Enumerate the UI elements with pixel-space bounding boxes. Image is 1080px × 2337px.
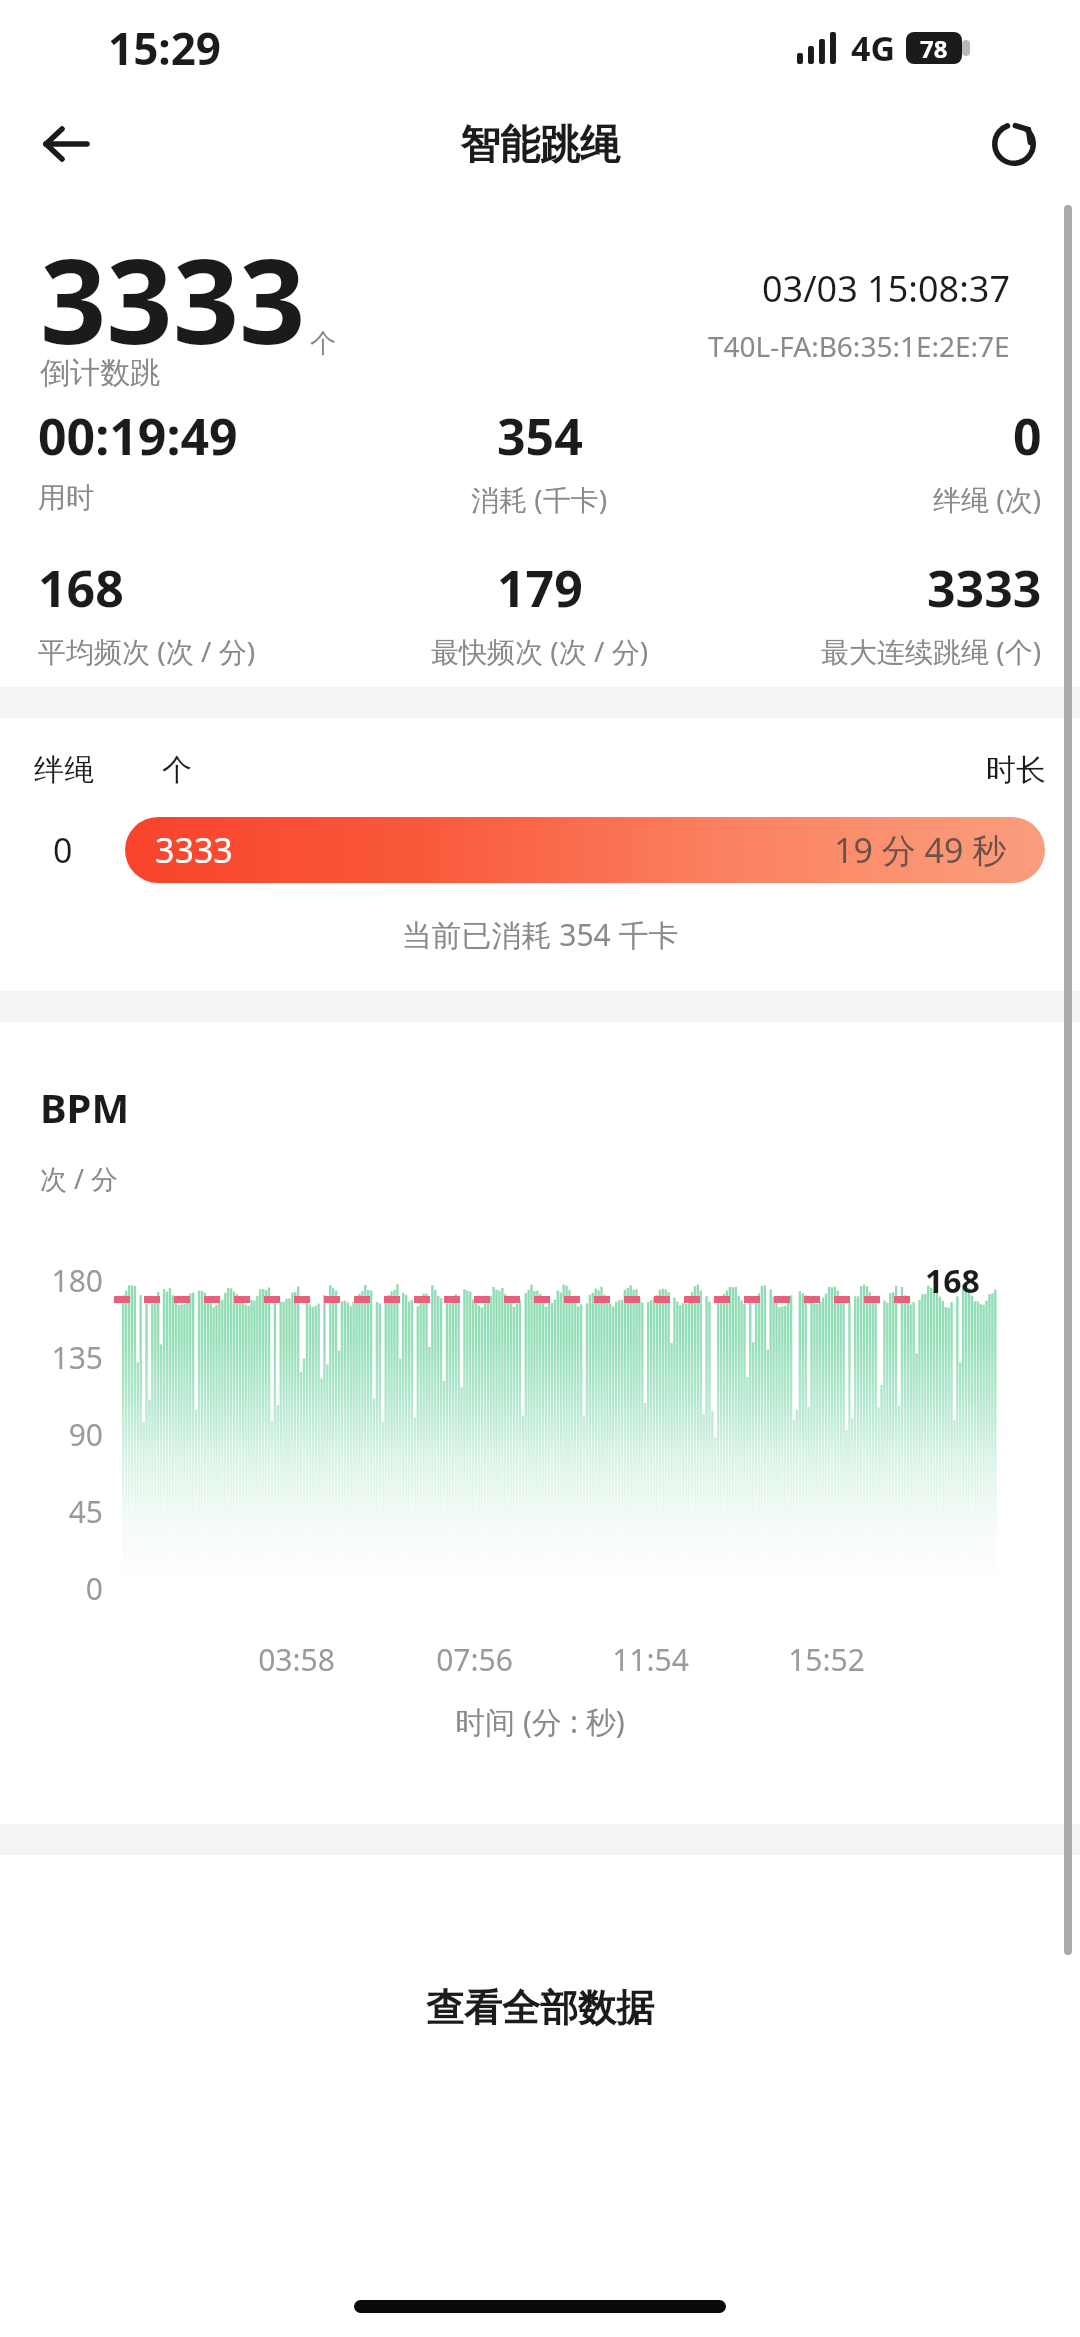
staticText: 3333 (155, 827, 233, 873)
staticText: 绊绳 (34, 751, 94, 789)
staticText: 个 (162, 751, 192, 789)
staticText: 45 (68, 1491, 103, 1532)
button[interactable]: Back (22, 100, 110, 188)
staticText: 消耗 (千卡) (471, 480, 608, 518)
staticText: 当前已消耗 354 千卡 (0, 914, 1080, 955)
staticText: 倒计数跳 (40, 354, 160, 392)
button[interactable]: 查看全部数据 (0, 1960, 1080, 2056)
staticText: 19 分 49 秒 (834, 827, 1007, 873)
staticText: 时长 (986, 751, 1046, 789)
staticText: 时间 (分 : 秒) (0, 1701, 1080, 1742)
staticText: 07:56 (436, 1639, 513, 1680)
staticText: 0 (1013, 402, 1042, 470)
staticText: 90 (68, 1414, 103, 1455)
staticText: 最大连续跳绳 (个) (821, 632, 1042, 670)
staticText: 查看全部数据 (426, 1984, 654, 2032)
staticText: 135 (51, 1337, 103, 1378)
staticText: 0 (53, 827, 73, 873)
staticText: 179 (497, 554, 583, 622)
staticText: 次 / 分 (40, 1160, 119, 1197)
staticText: 15:29 (108, 18, 222, 78)
staticText: 03/03 15:08:37 (762, 264, 1010, 313)
staticText: 绊绳 (次) (933, 480, 1042, 518)
staticText: 个 (310, 327, 336, 360)
button[interactable]: Refresh (970, 100, 1058, 188)
staticText: 180 (51, 1260, 103, 1301)
staticText: 168 (925, 1259, 980, 1303)
staticText: 智能跳绳 (460, 119, 620, 169)
staticText: 0 (85, 1568, 103, 1609)
staticText: 3333 (927, 554, 1042, 622)
staticText: 354 (497, 402, 583, 470)
staticText: BPM (40, 1080, 130, 1134)
button[interactable]: 3333 (125, 817, 1045, 883)
staticText: 00:19:49 (38, 402, 238, 470)
staticText: 3333 (40, 220, 306, 378)
staticText: 15:52 (788, 1639, 865, 1680)
staticText: 78 (920, 32, 948, 64)
staticText: 用时 (38, 480, 94, 515)
staticText: 最快频次 (次 / 分) (431, 632, 649, 670)
staticText: 4G (851, 25, 896, 71)
staticText: T40L-FA:B6:35:1E:2E:7E (708, 327, 1010, 365)
staticText: 03:58 (258, 1639, 335, 1680)
staticText: 平均频次 (次 / 分) (38, 632, 256, 670)
staticText: 168 (38, 554, 124, 622)
staticText: 11:54 (612, 1639, 689, 1680)
